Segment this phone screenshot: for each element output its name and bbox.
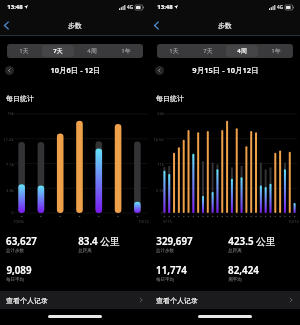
staticText: 5.5k [156, 188, 164, 193]
staticText: 3.8k [6, 188, 14, 193]
staticText: 总距离 [228, 248, 242, 254]
staticText: 每日统计 [6, 94, 34, 103]
staticText: 22k [157, 111, 164, 116]
staticText: 7.5k [6, 162, 14, 167]
staticText: 1天 [169, 47, 179, 55]
button[interactable]: 查看个人记录 [0, 291, 150, 309]
staticText: 63,627 [6, 235, 37, 248]
button[interactable]: Back [0, 19, 12, 31]
staticText: 每日平均 [156, 277, 174, 283]
staticText: 9/15 [163, 219, 172, 224]
staticText: 1天 [19, 47, 29, 55]
staticText: 10/12 [288, 219, 299, 224]
staticText: 查看个人记录 [6, 296, 48, 305]
staticText: 4G [127, 4, 133, 10]
staticText: 1年 [271, 47, 281, 55]
staticText: 16.5k [153, 137, 164, 142]
staticText: 每日平均 [6, 277, 24, 283]
staticText: 7天 [53, 47, 63, 55]
staticText: 10月6日 - 12日 [50, 65, 101, 75]
staticText: 11.2k [3, 137, 14, 142]
button[interactable]: 查看个人记录 [150, 291, 300, 309]
staticText: 步数 [68, 21, 82, 30]
staticText: 82,424 [228, 264, 259, 277]
staticText: 步数 [218, 21, 232, 30]
button[interactable]: Previous period [155, 66, 164, 75]
staticText: 9月15日 - 10月12日 [192, 65, 259, 75]
staticText: 4周 [237, 47, 247, 55]
staticText: 329,697 [156, 235, 193, 248]
staticText: 423.5 公里 [228, 235, 276, 248]
staticText: 13:48 [157, 3, 173, 11]
staticText: 11k [157, 162, 164, 167]
staticText: 0 [11, 210, 14, 215]
staticText: 每日统计 [156, 94, 184, 103]
staticText: 11,774 [156, 264, 187, 277]
staticText: 查看个人记录 [156, 296, 198, 305]
staticText: 10/06 [13, 219, 24, 224]
button[interactable]: 1年 [260, 45, 292, 57]
staticText: 总计步数 [156, 248, 174, 254]
staticText: 13:48 [7, 3, 23, 11]
button[interactable]: 4周 [226, 45, 258, 57]
staticText: 10/12 [138, 219, 149, 224]
staticText: 83.4 公里 [78, 235, 120, 248]
button[interactable]: 1天 [158, 45, 190, 57]
button[interactable]: 7天 [42, 45, 74, 57]
staticText: 15k [7, 111, 14, 116]
button[interactable]: 1天 [8, 45, 40, 57]
button[interactable]: 7天 [192, 45, 224, 57]
button[interactable]: Back [150, 19, 162, 31]
staticText: 4G [277, 4, 283, 10]
staticText: 总距离 [78, 248, 92, 254]
staticText: 9,089 [6, 264, 32, 277]
staticText: 周平均 [228, 277, 242, 283]
staticText: 4周 [87, 47, 97, 55]
button[interactable]: 4周 [76, 45, 108, 57]
staticText: 总计步数 [6, 248, 24, 254]
button[interactable]: 1年 [110, 45, 142, 57]
button[interactable]: Previous period [5, 66, 14, 75]
staticText: 7天 [203, 47, 213, 55]
staticText: 0 [161, 210, 164, 215]
staticText: 1年 [121, 47, 131, 55]
